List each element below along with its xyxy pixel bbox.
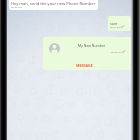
staticText: Hey man, send the your new Phone Number [11, 1, 96, 7]
other: Delivered [121, 25, 124, 28]
staticText: sure [110, 21, 118, 26]
staticText: 06:36 PM [11, 5, 22, 8]
staticText: 06:38 PM [111, 50, 122, 53]
staticText: MESSAGE [76, 63, 93, 68]
staticText: My New Number [78, 43, 106, 48]
staticText: 06:37 PM [110, 25, 121, 28]
button[interactable]: MESSAGE [43, 59, 131, 70]
button[interactable]: My New Number [43, 37, 131, 70]
button[interactable]: Hey man, send the your new Phone Number [9, 0, 98, 10]
other: Delivered [122, 50, 125, 53]
button[interactable]: sure [108, 16, 131, 31]
